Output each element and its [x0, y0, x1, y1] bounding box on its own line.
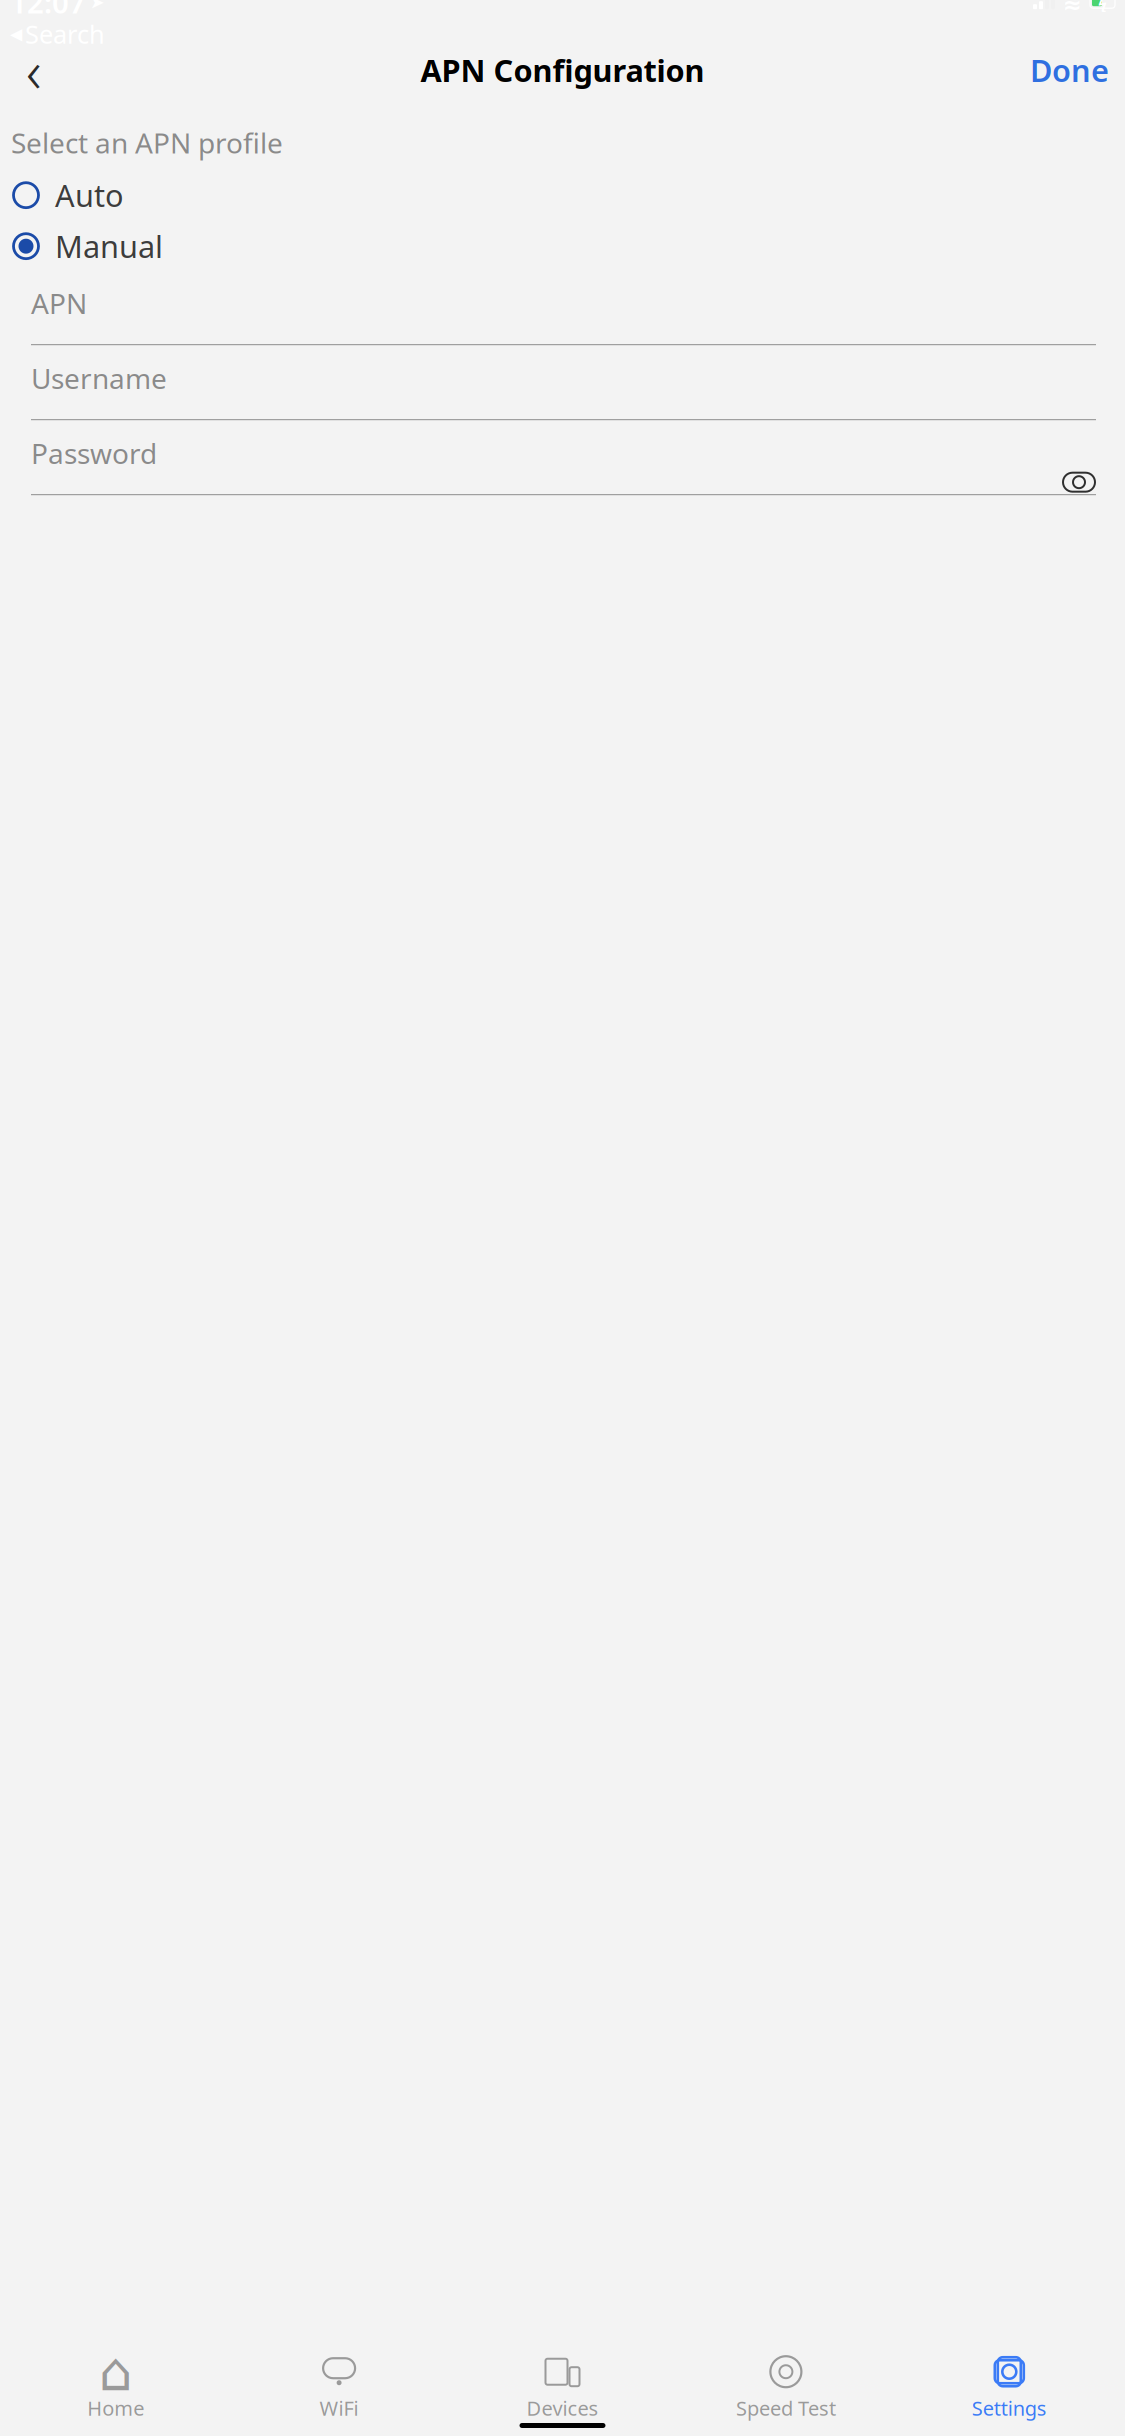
button[interactable]: Done: [1026, 48, 1113, 92]
staticText: ➤: [90, 0, 105, 12]
button[interactable]: Manual: [0, 224, 1125, 268]
button[interactable]: Back: [12, 48, 56, 92]
button[interactable]: Devices: [451, 2359, 674, 2417]
staticText: Home: [87, 2395, 144, 2421]
button[interactable]: Show password: [1062, 469, 1096, 495]
button[interactable]: Settings: [898, 2359, 1121, 2417]
staticText: ≋: [1063, 0, 1082, 15]
staticText: Devices: [526, 2395, 598, 2421]
staticText: ◀: [10, 25, 22, 43]
staticText: 12:07: [10, 0, 86, 22]
staticText: APN Configuration: [420, 50, 704, 90]
button[interactable]: Speed Test: [674, 2359, 898, 2417]
staticText: APN: [31, 285, 87, 322]
button[interactable]: WiFi: [227, 2359, 451, 2417]
staticText: Password: [31, 435, 157, 472]
button[interactable]: Auto: [0, 173, 1125, 217]
staticText: ϟ: [1098, 0, 1107, 13]
staticText: ⌂: [99, 2341, 133, 2402]
staticText: Select an APN profile: [11, 124, 283, 161]
button[interactable]: ⌂: [4, 2359, 227, 2417]
staticText: ‹: [26, 31, 42, 109]
staticText: Search: [25, 17, 105, 51]
staticText: WiFi: [320, 2395, 359, 2421]
staticText: Settings: [972, 2395, 1047, 2421]
staticText: Manual: [55, 226, 163, 266]
staticText: Username: [31, 360, 167, 397]
staticText: Speed Test: [736, 2395, 836, 2421]
staticText: Done: [1030, 50, 1109, 90]
staticText: Auto: [55, 175, 124, 215]
